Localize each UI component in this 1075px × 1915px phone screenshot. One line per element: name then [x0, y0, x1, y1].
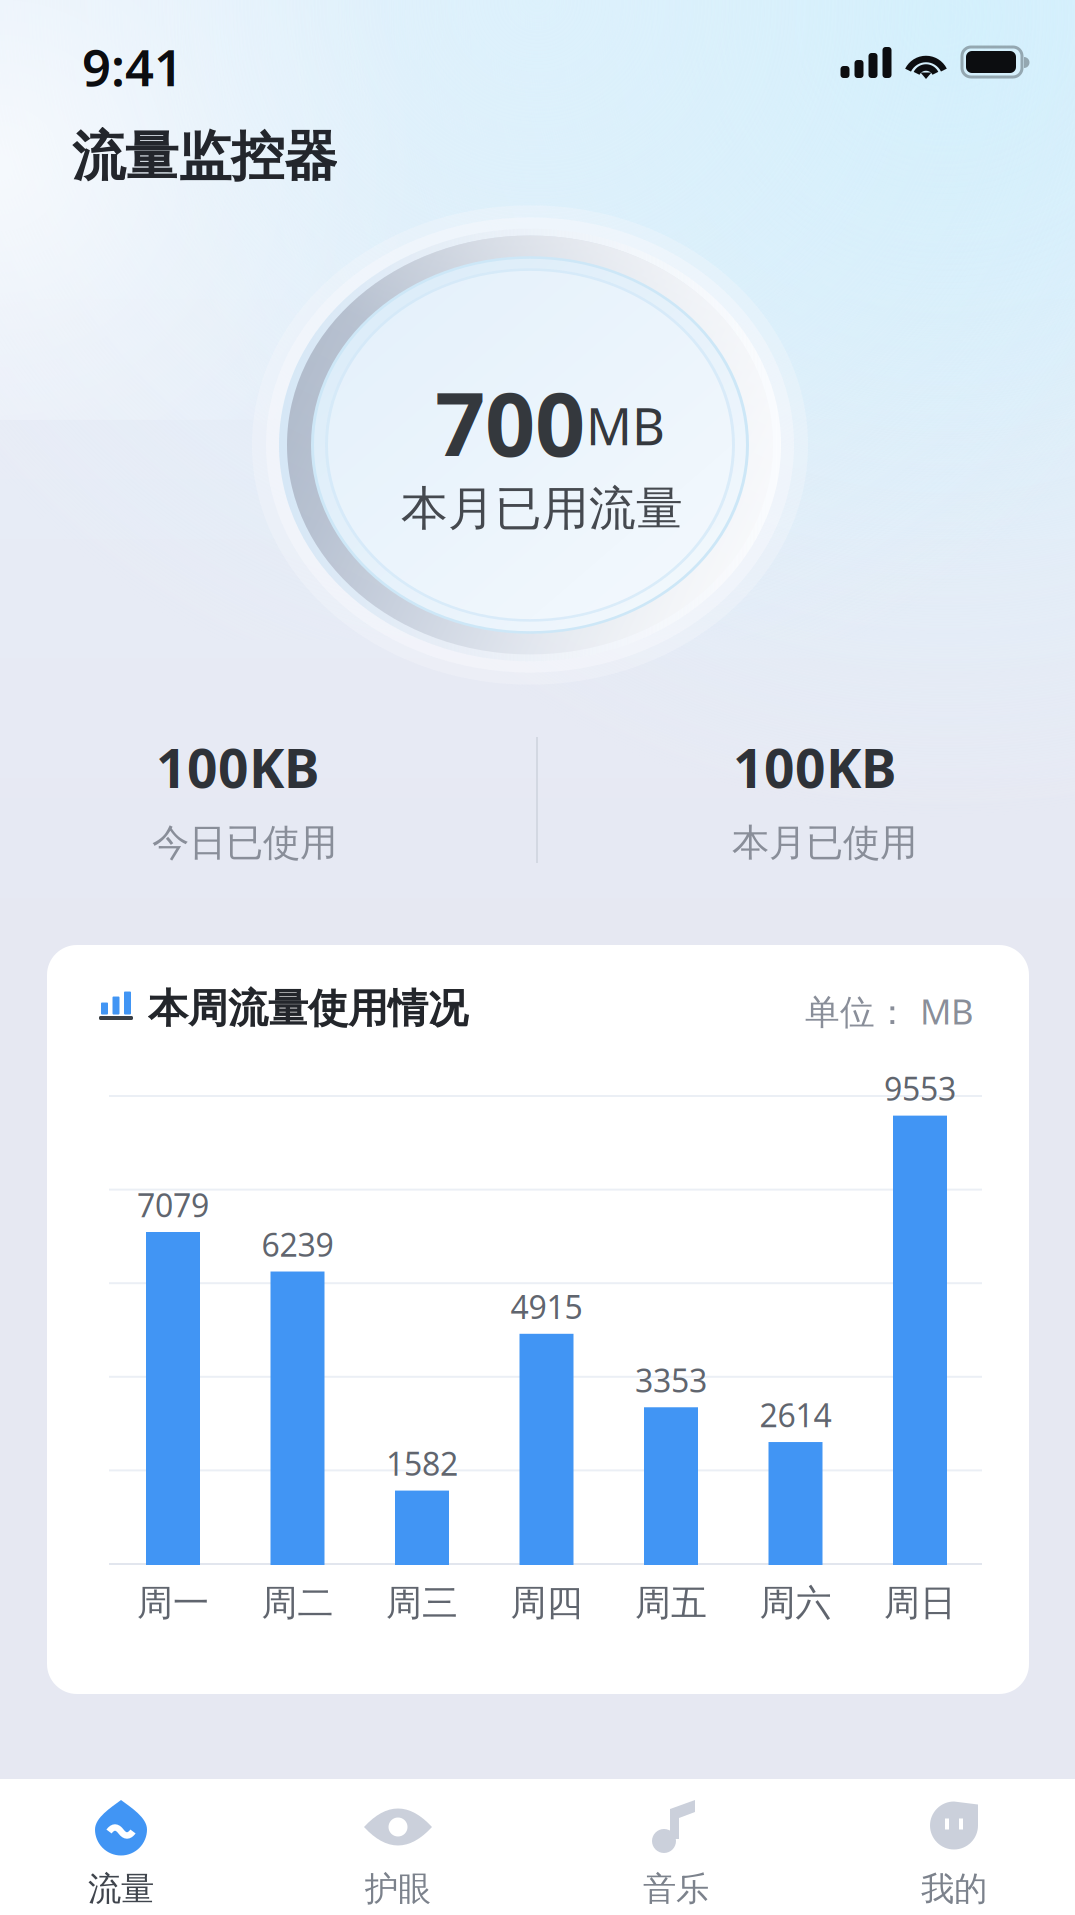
- staticText: 周六: [759, 1581, 831, 1625]
- staticText: 周三: [386, 1581, 458, 1625]
- staticText: 本周流量使用情况: [148, 984, 468, 1033]
- button[interactable]: 流量: [1, 1785, 241, 1915]
- button[interactable]: 护眼: [278, 1785, 518, 1915]
- staticText: 周四: [510, 1581, 582, 1625]
- button[interactable]: 我的: [834, 1785, 1074, 1915]
- staticText: 本月已使用: [732, 820, 917, 866]
- staticText: 100KB: [156, 732, 319, 803]
- staticText: 周一: [137, 1581, 209, 1625]
- staticText: 周日: [884, 1581, 956, 1625]
- staticText: 4915: [510, 1285, 582, 1328]
- staticText: MB: [586, 392, 665, 459]
- staticText: 周二: [261, 1581, 333, 1625]
- staticText: 2614: [759, 1393, 831, 1436]
- staticText: 单位： MB: [805, 988, 974, 1034]
- button[interactable]: 音乐: [556, 1785, 796, 1915]
- staticText: 100KB: [733, 732, 896, 803]
- staticText: 护眼: [365, 1868, 431, 1909]
- staticText: 本月已用流量: [401, 480, 683, 537]
- staticText: 流量: [88, 1868, 154, 1909]
- staticText: 700: [435, 364, 585, 481]
- staticText: 6239: [261, 1223, 333, 1265]
- staticText: 9553: [884, 1067, 956, 1110]
- staticText: 7079: [137, 1183, 209, 1226]
- staticText: 3353: [635, 1359, 707, 1401]
- staticText: 9:41: [82, 33, 183, 100]
- staticText: 我的: [921, 1868, 987, 1909]
- staticText: 音乐: [643, 1868, 709, 1909]
- staticText: 1582: [386, 1442, 458, 1485]
- staticText: 周五: [635, 1581, 707, 1625]
- staticText: 流量监控器: [72, 124, 337, 189]
- staticText: 今日已使用: [152, 820, 337, 866]
